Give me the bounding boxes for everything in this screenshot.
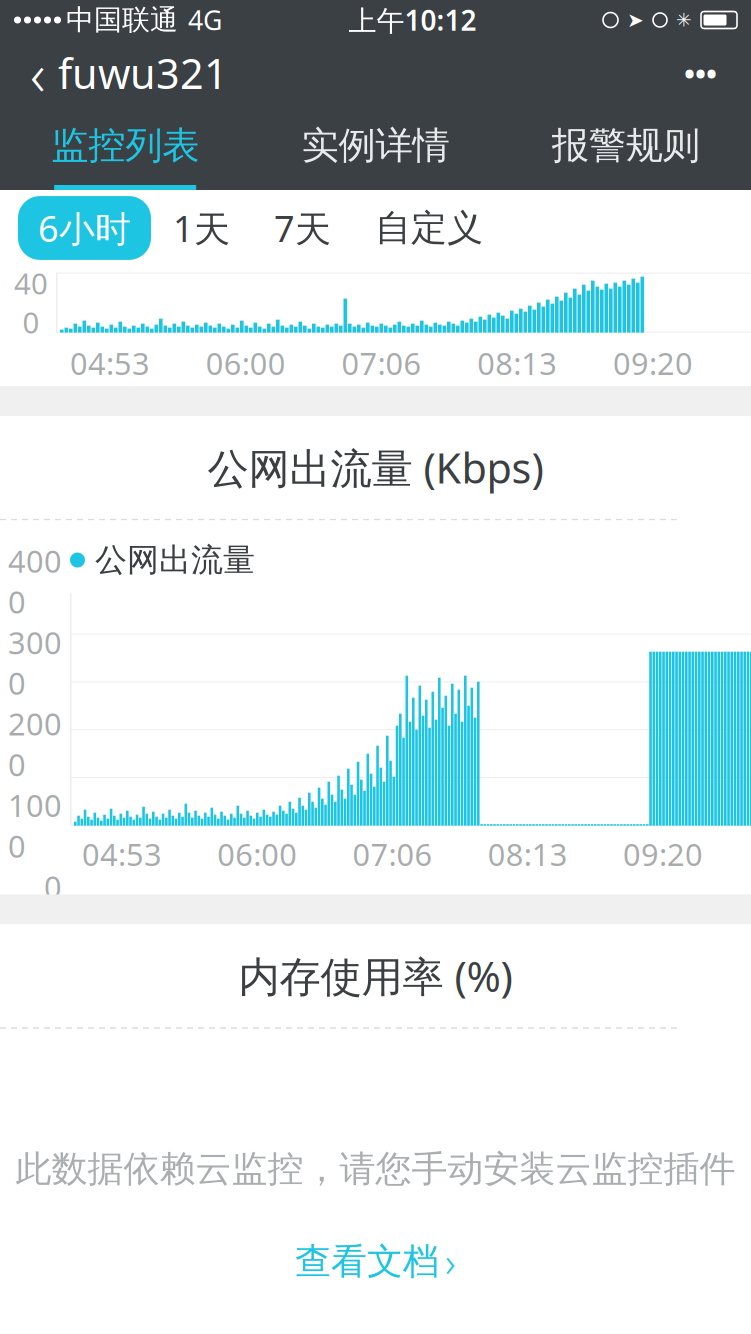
staticText: 此数据依赖云监控，请您手动安装云监控插件 — [15, 1147, 735, 1191]
button[interactable]: 查看文档 — [275, 1225, 476, 1298]
staticText: 06:00 — [217, 834, 297, 874]
staticText: 4000 — [8, 540, 62, 622]
staticText: 4G — [188, 2, 222, 38]
button[interactable]: More options — [660, 37, 741, 108]
staticText: 2000 — [8, 703, 62, 785]
staticText: 07:06 — [352, 834, 432, 874]
staticText: 内存使用率 (%) — [238, 948, 512, 1003]
staticText: 0 — [44, 866, 62, 907]
button[interactable]: 监控列表 — [0, 106, 250, 190]
staticText: 7天 — [274, 204, 331, 252]
staticText: 3000 — [8, 622, 62, 703]
button[interactable]: 6小时 — [18, 196, 151, 260]
staticText: 自定义 — [375, 206, 483, 250]
staticText: › — [445, 1235, 456, 1288]
staticText: 08:13 — [488, 834, 568, 874]
button[interactable]: 7天 — [252, 196, 353, 260]
staticText: 实例详情 — [301, 123, 449, 168]
staticText: 04:53 — [70, 343, 150, 383]
button[interactable]: 实例详情 — [250, 106, 501, 190]
staticText: ✳ — [676, 9, 692, 31]
staticText: 07:06 — [341, 343, 421, 383]
staticText: 查看文档 — [295, 1239, 439, 1284]
staticText: 08:13 — [477, 343, 557, 383]
staticText: 40 — [14, 264, 48, 303]
staticText: 报警规则 — [552, 123, 700, 168]
staticText: 1天 — [173, 204, 230, 252]
button[interactable]: 1天 — [151, 196, 252, 260]
staticText: 公网出流量 (Kbps) — [207, 440, 543, 495]
staticText: ‹ — [30, 34, 46, 112]
staticText: fuwu321 — [58, 46, 228, 100]
button[interactable]: 自定义 — [353, 198, 505, 258]
staticText: 1000 — [8, 785, 62, 866]
staticText: ➤ — [627, 9, 644, 31]
staticText: 0 — [22, 303, 39, 342]
button[interactable]: ‹ — [0, 28, 228, 118]
button[interactable]: 报警规则 — [501, 106, 751, 190]
staticText: 上午10:12 — [348, 1, 476, 39]
staticText: 中国联通 — [66, 3, 178, 37]
staticText: 06:00 — [206, 343, 286, 383]
staticText: 6小时 — [38, 204, 131, 252]
staticText: ••• — [684, 53, 717, 92]
staticText: 09:20 — [623, 834, 703, 874]
staticText: 09:20 — [613, 343, 693, 383]
staticText: 公网出流量 — [95, 540, 255, 580]
staticText: 04:53 — [82, 834, 162, 874]
staticText: 监控列表 — [51, 123, 199, 168]
